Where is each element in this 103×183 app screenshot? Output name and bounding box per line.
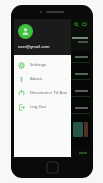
- staticText: user@gmail.com: [18, 44, 50, 49]
- staticText: Disconnect TV-Box: [30, 90, 68, 96]
- button[interactable]: Search: [74, 22, 79, 27]
- staticText: Settings: [30, 62, 47, 68]
- staticText: Log Out: [30, 104, 46, 110]
- button[interactable]: Log Out: [14, 100, 71, 114]
- button[interactable]: Disconnect TV-Box: [14, 86, 71, 100]
- button[interactable]: About: [14, 72, 71, 86]
- staticText: About: [30, 76, 43, 82]
- button[interactable]: [14, 68, 90, 85]
- button[interactable]: Cast: [82, 22, 87, 27]
- button[interactable]: Settings: [14, 58, 71, 72]
- button[interactable]: user@gmail.com: [14, 19, 71, 55]
- button[interactable]: [16, 120, 88, 138]
- button[interactable]: Home: [47, 162, 58, 173]
- button[interactable]: [14, 85, 90, 102]
- button[interactable]: [14, 102, 90, 119]
- button[interactable]: [14, 51, 90, 68]
